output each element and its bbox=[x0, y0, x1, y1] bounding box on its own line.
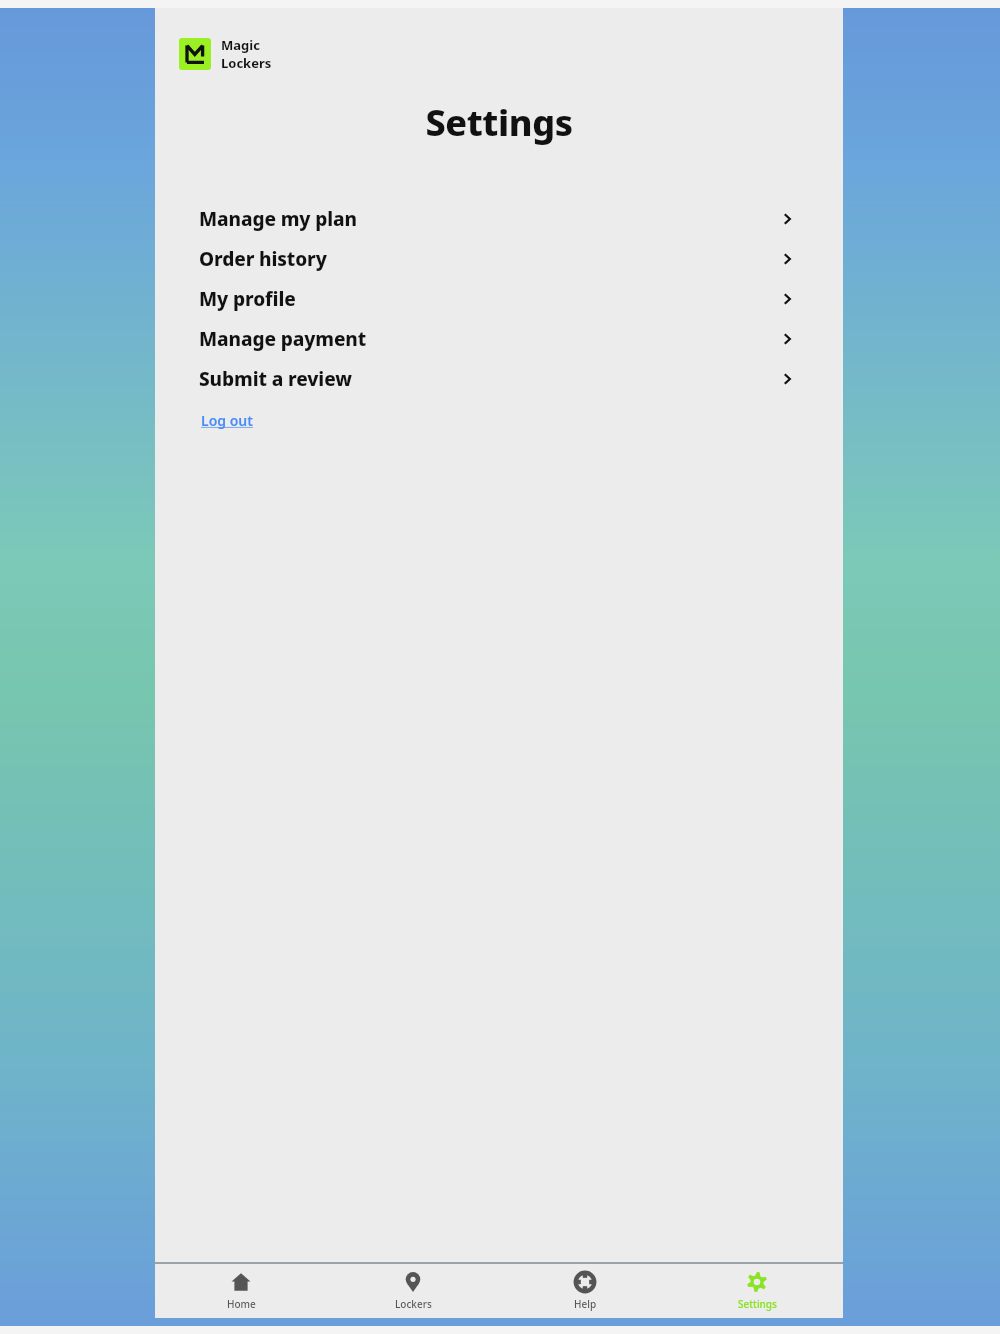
staticText: Manage payment bbox=[199, 326, 367, 352]
button[interactable]: Manage payment bbox=[155, 319, 843, 359]
staticText: Magic bbox=[221, 36, 260, 54]
button[interactable]: Manage my plan bbox=[155, 199, 843, 239]
button[interactable]: Order history bbox=[155, 239, 843, 279]
staticText: Home bbox=[227, 1297, 256, 1311]
staticText: Submit a review bbox=[199, 366, 352, 392]
staticText: Lockers bbox=[221, 54, 272, 72]
button[interactable]: My profile bbox=[155, 279, 843, 319]
staticText: My profile bbox=[199, 286, 296, 312]
button[interactable]: Lockers bbox=[327, 1264, 499, 1318]
staticText: Log out bbox=[201, 411, 253, 430]
button[interactable]: Settings bbox=[671, 1264, 843, 1318]
button[interactable]: Submit a review bbox=[155, 359, 843, 399]
staticText: Settings bbox=[155, 98, 843, 147]
button[interactable]: Home bbox=[155, 1264, 327, 1318]
staticText: Lockers bbox=[395, 1297, 432, 1311]
staticText: Manage my plan bbox=[199, 206, 357, 232]
staticText: Order history bbox=[199, 246, 327, 272]
button[interactable]: Help bbox=[499, 1264, 671, 1318]
staticText: Settings bbox=[738, 1297, 777, 1311]
staticText: Help bbox=[574, 1297, 597, 1311]
button[interactable]: Log out bbox=[199, 407, 255, 434]
